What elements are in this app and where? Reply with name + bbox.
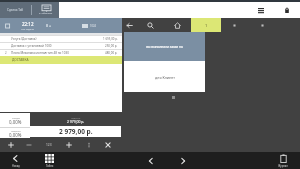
button[interactable]: Add item: [61, 138, 77, 152]
staticText: для Клиент: [155, 75, 175, 80]
staticText: наценка: [11, 129, 21, 132]
button[interactable]: Add: [3, 138, 19, 152]
button[interactable]: More: [248, 18, 276, 32]
staticText: 1: [205, 23, 208, 28]
button[interactable]: ДОСТАВКА: [0, 56, 122, 64]
button[interactable]: More: [81, 138, 97, 152]
staticText: Услуга (Доставка): [11, 37, 37, 41]
button[interactable]: Menu: [59, 2, 300, 18]
staticText: 2 979,00 р.: [59, 127, 93, 136]
staticText: Сделка Таб: [7, 8, 24, 12]
staticText: 8 +: [46, 23, 52, 28]
staticText: Назад: [12, 164, 20, 168]
button[interactable]: Menu: [221, 18, 248, 32]
staticText: Журнал: [278, 164, 288, 168]
button[interactable]: App: [4, 22, 12, 30]
staticText: 123: [46, 143, 52, 147]
staticText: подытог: [71, 116, 81, 119]
button[interactable]: Remove: [21, 138, 37, 152]
button[interactable]: для Клиент: [124, 61, 205, 92]
staticText: 2: [5, 51, 7, 55]
staticText: В Избранное: [39, 12, 53, 15]
staticText: ДОСТАВКА: [12, 58, 29, 62]
staticText: 2 979,00 р.: [67, 119, 85, 124]
button[interactable]: Journal: [269, 152, 297, 169]
staticText: Доставка с установкой 1000: [11, 44, 52, 48]
staticText: вы выполнили заказ на: [146, 45, 183, 49]
button[interactable]: Secure: [281, 4, 293, 16]
button[interactable]: Home: [164, 18, 191, 32]
button[interactable]: подытог: [30, 113, 122, 126]
button[interactable]: Next: [173, 152, 193, 169]
button[interactable]: Услуга (Доставка): [0, 35, 122, 42]
staticText: скидка: [12, 116, 20, 119]
staticText: 1024: [90, 24, 96, 28]
button[interactable]: 2: [0, 49, 122, 56]
staticText: 100 задача: [21, 27, 34, 30]
staticText: 250,00 р.: [105, 44, 118, 48]
staticText: 0,00%: [9, 119, 22, 125]
button[interactable]: Tabs: [32, 2, 59, 18]
button[interactable]: Сделка Таб: [0, 2, 31, 18]
button[interactable]: Menu: [255, 4, 267, 16]
staticText: 1 695,00 р.: [103, 37, 118, 41]
button[interactable]: 2 979,00 р.: [30, 126, 121, 137]
button[interactable]: Back: [1, 152, 29, 169]
staticText: Табло: [46, 164, 54, 168]
staticText: 0,00%: [9, 132, 22, 138]
button[interactable]: Numbers: [41, 138, 57, 152]
button[interactable]: Search: [137, 18, 164, 32]
staticText: Плата Механика монтаж тип 48 по 1030: [11, 51, 69, 55]
button[interactable]: Back: [122, 18, 137, 32]
staticText: 22:12: [22, 21, 34, 27]
button[interactable]: Apps: [35, 152, 63, 169]
button[interactable]: Close: [100, 138, 116, 152]
staticText: 480,00 р.: [105, 51, 118, 55]
button[interactable]: Доставка с установкой 1000: [0, 42, 122, 49]
button[interactable]: Previous: [141, 152, 161, 169]
button[interactable]: 1: [191, 18, 221, 32]
